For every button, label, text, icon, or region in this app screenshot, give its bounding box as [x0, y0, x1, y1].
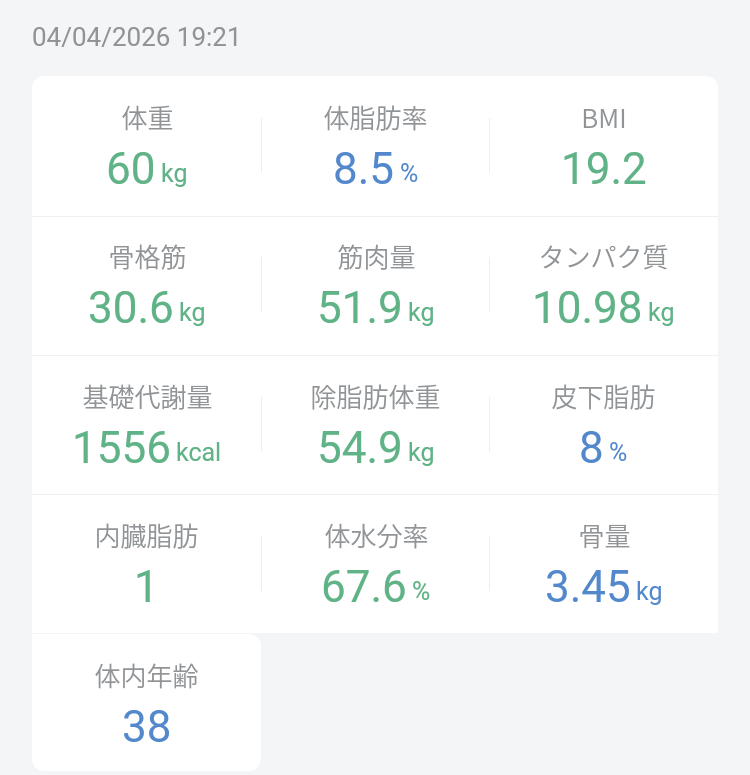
staticText: 体水分率: [324, 516, 429, 554]
button[interactable]: 内臓脂肪: [32, 494, 261, 633]
staticText: 体脂肪率: [323, 98, 428, 136]
staticText: kg: [161, 159, 188, 188]
staticText: 8.5: [333, 143, 395, 195]
staticText: 67.6: [321, 561, 407, 613]
button[interactable]: 骨量: [489, 494, 718, 633]
button[interactable]: 皮下脂肪: [489, 355, 718, 494]
staticText: 30.6: [88, 282, 174, 334]
staticText: 60: [106, 143, 156, 195]
staticText: 骨量: [578, 516, 631, 554]
staticText: kg: [408, 438, 435, 467]
staticText: kg: [179, 298, 206, 327]
button[interactable]: BMI: [489, 76, 718, 215]
staticText: 体内年齢: [94, 656, 199, 694]
staticText: kg: [648, 298, 675, 327]
staticText: 体重: [121, 98, 174, 136]
staticText: %: [609, 438, 628, 467]
button[interactable]: 体脂肪率: [261, 76, 490, 215]
staticText: %: [412, 577, 431, 606]
staticText: 筋肉量: [337, 237, 416, 275]
staticText: タンパク質: [538, 237, 669, 275]
staticText: 19.2: [561, 143, 647, 195]
staticText: 38: [122, 701, 172, 753]
button[interactable]: 基礎代謝量: [32, 355, 261, 494]
staticText: 皮下脂肪: [551, 377, 656, 415]
staticText: 骨格筋: [108, 237, 187, 275]
staticText: 8: [579, 422, 604, 474]
staticText: BMI: [581, 98, 627, 136]
button[interactable]: 体重: [32, 76, 261, 215]
staticText: 基礎代謝量: [82, 377, 213, 415]
staticText: 除脂肪体重: [310, 377, 441, 415]
button[interactable]: 骨格筋: [32, 215, 261, 354]
staticText: kg: [636, 577, 663, 606]
staticText: kg: [408, 298, 435, 327]
staticText: 51.9: [317, 282, 403, 334]
staticText: %: [400, 159, 419, 188]
button[interactable]: 体水分率: [261, 494, 490, 633]
staticText: kcal: [176, 438, 222, 467]
staticText: 1556: [72, 422, 171, 474]
staticText: 1: [134, 561, 159, 613]
button[interactable]: 除脂肪体重: [261, 355, 490, 494]
staticText: 04/04/2026 19:21: [32, 22, 242, 52]
button[interactable]: 筋肉量: [261, 215, 490, 354]
button[interactable]: 体内年齢: [32, 634, 261, 771]
staticText: 54.9: [317, 422, 403, 474]
staticText: 10.98: [532, 282, 643, 334]
staticText: 内臓脂肪: [94, 516, 199, 554]
button[interactable]: タンパク質: [489, 215, 718, 354]
staticText: 3.45: [545, 561, 631, 613]
